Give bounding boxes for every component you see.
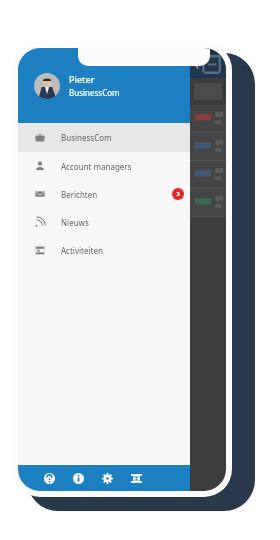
button[interactable]: Information <box>69 469 87 487</box>
button[interactable]: Settings <box>98 469 116 487</box>
staticText: Activiteiten <box>61 245 103 256</box>
staticText: 3 <box>176 190 180 198</box>
button[interactable]: Log out <box>127 469 145 487</box>
button[interactable]: Activiteiten <box>18 236 190 264</box>
staticText: Nieuws <box>61 217 89 228</box>
button[interactable]: Account managers <box>18 152 190 180</box>
staticText: Pieter <box>69 73 95 85</box>
button[interactable]: Berichten <box>18 180 190 208</box>
button[interactable]: Nieuws <box>18 208 190 236</box>
button[interactable]: Help <box>40 469 58 487</box>
button[interactable]: BusinessCom <box>18 123 190 152</box>
staticText: Account managers <box>61 161 132 172</box>
staticText: BusinessCom <box>69 87 120 98</box>
staticText: Berichten <box>61 189 98 200</box>
staticText: BusinessCom <box>61 132 112 143</box>
